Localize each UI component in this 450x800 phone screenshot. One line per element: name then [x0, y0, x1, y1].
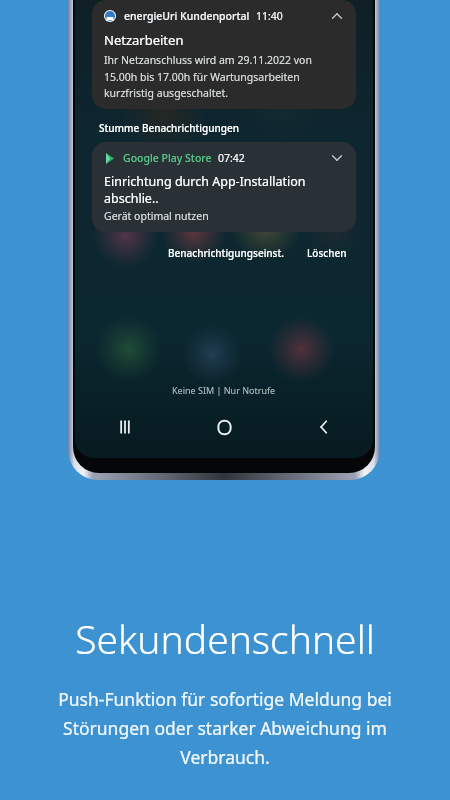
staticText: 07:42 — [218, 151, 245, 165]
staticText: Ihr Netzanschluss wird am 29.11.2022 von… — [104, 53, 344, 100]
button[interactable]: Löschen — [303, 242, 351, 264]
staticText: Benachrichtigungseinst. — [168, 246, 285, 260]
button[interactable]: Recents — [75, 410, 175, 444]
staticText: Keine SIM | Nur Notrufe — [172, 384, 276, 396]
staticText: Netzarbeiten — [104, 31, 184, 49]
staticText: Gerät optimal nutzen — [104, 209, 209, 223]
staticText: Google Play Store — [123, 151, 212, 165]
staticText: Löschen — [307, 246, 347, 260]
staticText: 11:40 — [256, 9, 283, 23]
staticText: Einrichtung durch App-Installation absch… — [104, 173, 344, 207]
staticText: energieUri Kundenportal — [124, 9, 250, 23]
button[interactable]: Collapse — [330, 9, 344, 23]
button[interactable]: energieUri Kundenportal — [92, 0, 356, 109]
staticText: Stumme Benachrichtigungen — [99, 121, 239, 135]
staticText: Sekundenschnell — [75, 612, 375, 665]
button[interactable]: Back — [274, 410, 373, 444]
staticText: Push-Funktion für sofortige Meldung bei … — [28, 687, 422, 769]
button[interactable]: Google Play Store — [92, 142, 356, 232]
button[interactable]: Home — [175, 410, 274, 444]
button[interactable]: Expand — [330, 151, 344, 165]
button[interactable]: Benachrichtigungseinst. — [164, 242, 289, 264]
